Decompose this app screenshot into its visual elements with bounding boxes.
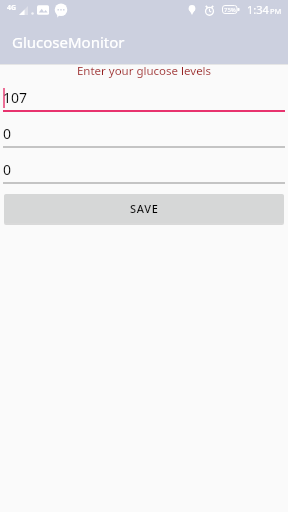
staticText: 4G [7,3,17,13]
staticText: 1:34 [247,2,269,17]
button[interactable]: Glucose level value field [3,158,285,186]
staticText: 0 [3,124,12,143]
button[interactable]: Glucose level value field [3,86,285,114]
staticText: SAVE [130,201,159,216]
staticText: 107 [3,88,28,107]
staticText: GlucoseMonitor [12,32,125,52]
staticText: Enter your glucose levels [0,63,288,79]
button[interactable]: Glucose level value field [3,122,285,150]
staticText: PM [270,6,282,16]
button[interactable]: SAVE [4,194,284,223]
staticText: 0 [3,160,12,179]
staticText: 75% [224,6,236,14]
